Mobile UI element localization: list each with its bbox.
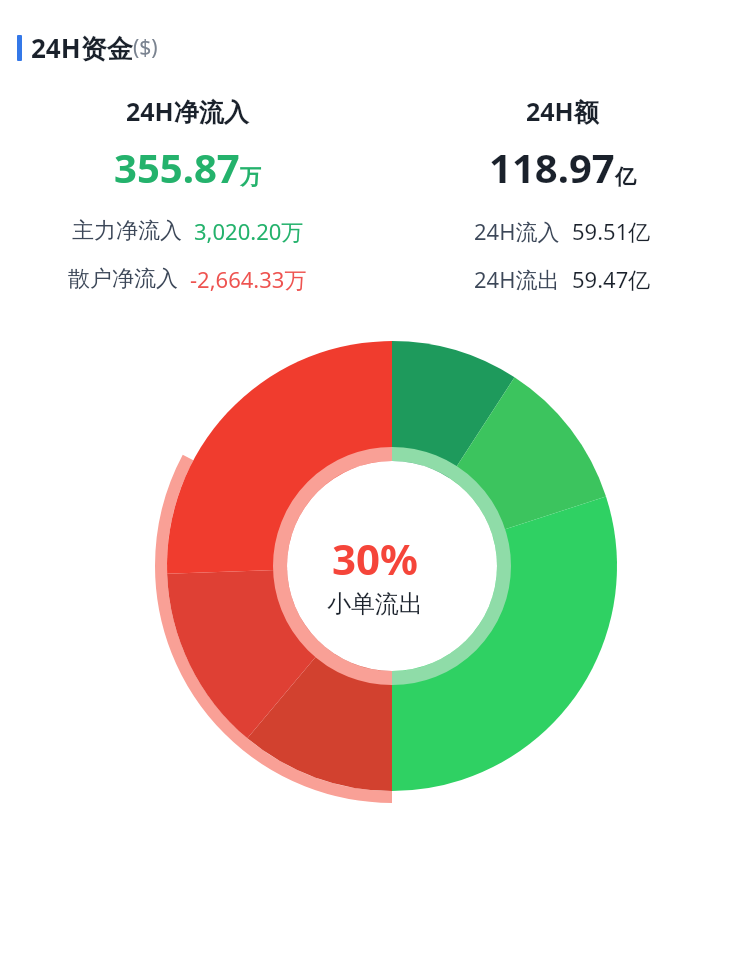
staticText: 万 xyxy=(240,164,261,190)
staticText: 小单流出 xyxy=(327,589,423,619)
staticText: 3,020.20万 xyxy=(194,216,304,246)
staticText: 24H资金 xyxy=(31,30,133,66)
staticText: 亿 xyxy=(615,164,636,190)
staticText: 24H流出 xyxy=(474,264,560,294)
staticText: 24H额 xyxy=(526,94,599,128)
button[interactable]: 24H流出 xyxy=(375,264,750,294)
button[interactable]: 主力净流入 xyxy=(0,216,375,246)
staticText: 59.47亿 xyxy=(572,264,651,294)
staticText: ($) xyxy=(133,33,158,62)
staticText: -2,664.33万 xyxy=(190,264,307,294)
staticText: 24H净流入 xyxy=(126,94,249,128)
staticText: 主力净流入 xyxy=(72,217,182,245)
staticText: 118.97 xyxy=(489,140,615,194)
staticText: 24H流入 xyxy=(474,216,560,246)
staticText: 30% xyxy=(332,530,418,587)
button[interactable]: 24H资金 xyxy=(17,30,750,66)
staticText: 355.87 xyxy=(114,140,240,194)
button[interactable]: 24H额 xyxy=(375,94,750,194)
button[interactable]: 24H流入 xyxy=(375,216,750,246)
staticText: 59.51亿 xyxy=(572,216,651,246)
button[interactable]: 资金流向占比环形图 xyxy=(0,330,750,830)
button[interactable]: 24H净流入 xyxy=(0,94,375,194)
staticText: 散户净流入 xyxy=(68,265,178,293)
button[interactable]: 散户净流入 xyxy=(0,264,375,294)
